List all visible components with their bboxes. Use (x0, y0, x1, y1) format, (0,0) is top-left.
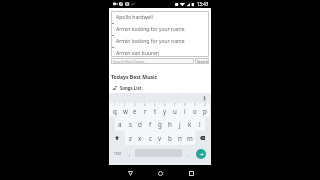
button[interactable]: v (155, 131, 165, 145)
staticText: t (154, 107, 157, 115)
button[interactable]: 5 (150, 103, 160, 117)
staticText: b (168, 134, 172, 142)
button[interactable]: 9 (190, 103, 200, 117)
button[interactable]: b (165, 131, 175, 145)
staticText: Armin van buuren (116, 50, 159, 57)
staticText: s (129, 120, 132, 128)
button[interactable]: 2 (120, 103, 130, 117)
staticText: h (168, 120, 172, 128)
staticText: f (149, 120, 152, 128)
button[interactable]: j (175, 117, 185, 131)
staticText: 9 (194, 103, 196, 107)
button[interactable]: Armin looking for your name (111, 36, 209, 47)
staticText: l (199, 120, 201, 128)
staticText: u (173, 107, 177, 115)
button[interactable]: g (155, 117, 165, 131)
button[interactable]: Enter (196, 149, 206, 159)
button[interactable]: Search Mp3 Songs.. (111, 58, 194, 64)
button[interactable]: f (145, 117, 155, 131)
button[interactable]: x (135, 131, 145, 145)
staticText: i (184, 107, 186, 115)
staticText: 0 (204, 103, 206, 107)
button[interactable]: h (165, 117, 175, 131)
staticText: 8 (184, 103, 186, 107)
button[interactable]: 7 (170, 103, 180, 117)
staticText: Songs List (120, 85, 142, 91)
button[interactable]: Period (184, 146, 191, 161)
button[interactable]: Home (150, 166, 170, 180)
button[interactable]: Comma (126, 146, 133, 161)
button[interactable]: 6 (160, 103, 170, 117)
button[interactable]: 3 (130, 103, 140, 117)
staticText: Armin looking for your name (116, 26, 185, 33)
staticText: w (123, 107, 128, 115)
staticText: q (113, 107, 117, 115)
staticText: 4 (144, 103, 146, 107)
staticText: d (138, 120, 142, 128)
staticText: . (187, 151, 189, 157)
button[interactable]: 4 (140, 103, 150, 117)
button[interactable]: s (125, 117, 135, 131)
button[interactable]: 0 (200, 103, 210, 117)
button[interactable]: c (145, 131, 155, 145)
staticText: a (118, 120, 122, 128)
staticText: e (133, 107, 137, 115)
staticText: z (129, 134, 132, 142)
staticText: 1 (114, 103, 116, 107)
staticText: m (187, 134, 193, 142)
staticText: y (163, 107, 167, 115)
button[interactable]: ?123 (110, 146, 124, 161)
staticText: x (138, 134, 142, 142)
staticText: c (149, 134, 152, 142)
button[interactable]: Armin van buuren (111, 48, 209, 57)
button[interactable]: a (115, 117, 125, 131)
button[interactable]: Search (195, 58, 209, 64)
staticText: g (158, 120, 162, 128)
staticText: 3 (134, 103, 136, 107)
button[interactable]: k (185, 117, 195, 131)
button[interactable]: Voice input (200, 93, 209, 103)
button[interactable]: n (175, 131, 185, 145)
staticText: , (129, 151, 131, 157)
staticText: 6 (164, 103, 166, 107)
button[interactable]: Armin looking for your name (111, 24, 209, 35)
staticText: Search (197, 59, 208, 64)
staticText: n (178, 134, 182, 142)
button[interactable]: l (195, 117, 205, 131)
staticText: Apollo hardwell (116, 14, 153, 21)
button[interactable]: 1 (109, 103, 120, 117)
button[interactable]: Back (120, 166, 140, 180)
staticText: j (179, 120, 181, 128)
staticText: 2 (124, 103, 126, 107)
button[interactable]: 8 (180, 103, 190, 117)
staticText: o (193, 107, 197, 115)
staticText: k (188, 120, 192, 128)
button[interactable]: Songs List (113, 85, 142, 91)
button[interactable]: Recents (181, 166, 201, 180)
button[interactable]: Apollo hardwell (111, 12, 209, 23)
staticText: r (144, 107, 147, 115)
staticText: Armin looking for your name (116, 38, 185, 45)
staticText: 5 (154, 103, 156, 107)
staticText: v (158, 134, 162, 142)
button[interactable]: Backspace (196, 132, 209, 144)
button[interactable]: Shift (110, 132, 124, 144)
staticText: ?123 (114, 151, 121, 156)
button[interactable]: d (135, 117, 145, 131)
staticText: p (203, 107, 207, 115)
staticText: Search Mp3 Songs.. (113, 59, 146, 64)
staticText: 13:43 (197, 1, 209, 7)
staticText: Todays Best Music (111, 74, 158, 81)
button[interactable]: z (125, 131, 135, 145)
button[interactable]: m (185, 131, 195, 145)
staticText: 7 (174, 103, 176, 107)
